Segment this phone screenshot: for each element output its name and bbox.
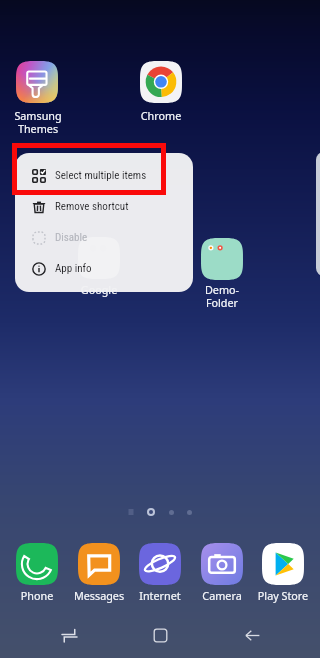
button[interactable]: Chrome	[140, 61, 182, 103]
button[interactable]: Recents	[46, 612, 92, 658]
staticText: Remove shortcut	[55, 200, 129, 213]
button[interactable]: Home	[137, 612, 183, 658]
staticText: App info	[55, 262, 92, 275]
staticText: Select multiple items	[55, 169, 147, 182]
button[interactable]: Messages	[69, 543, 129, 603]
button[interactable]: Camera	[192, 543, 252, 603]
button[interactable]: Samsung Themes	[16, 61, 58, 103]
staticText: Google	[49, 282, 149, 297]
staticText: Phone	[7, 588, 67, 603]
staticText: Chrome	[111, 108, 211, 123]
staticText: Camera	[192, 588, 252, 603]
staticText: Samsung Themes	[0, 108, 88, 136]
staticText: Demo- Folder	[172, 282, 272, 310]
staticText: Disable	[55, 231, 88, 244]
button[interactable]: Internet	[130, 543, 190, 603]
button[interactable]: Play Store	[253, 543, 313, 603]
button[interactable]: Demo-Folder	[201, 238, 243, 280]
button[interactable]: Back	[229, 612, 275, 658]
staticText: Messages	[69, 588, 129, 603]
staticText: Play Store	[253, 588, 313, 603]
button[interactable]: Disable	[15, 222, 193, 253]
staticText: Internet	[130, 588, 190, 603]
button[interactable]: Phone	[7, 543, 67, 603]
button[interactable]: App info	[15, 253, 193, 284]
button[interactable]: Remove shortcut	[15, 191, 193, 222]
button[interactable]: Select multiple items	[15, 160, 193, 191]
button[interactable]: Google	[78, 237, 120, 279]
